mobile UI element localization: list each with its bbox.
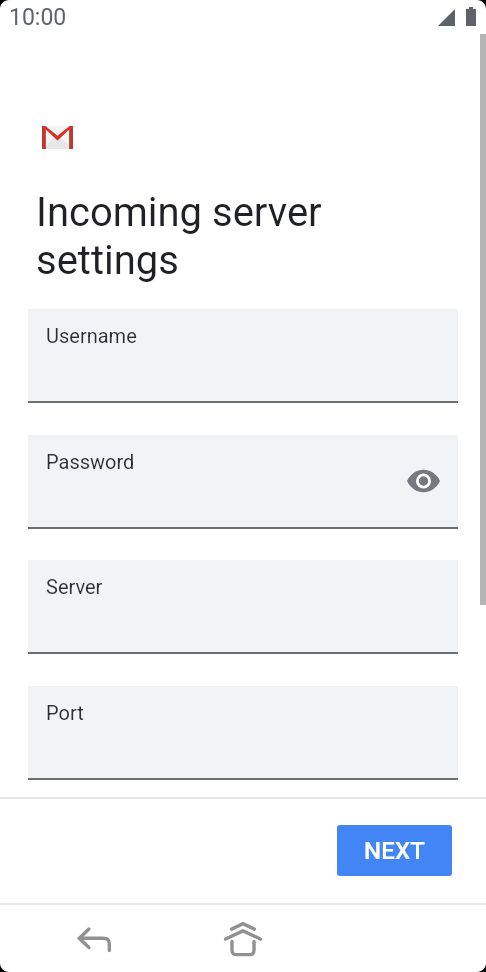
button[interactable]: Show password [401, 459, 445, 503]
button[interactable]: Username [28, 309, 458, 403]
staticText: NEXT [364, 837, 425, 865]
staticText: Username [46, 324, 137, 347]
button[interactable]: Back [54, 908, 134, 970]
button[interactable]: Password [28, 435, 458, 529]
staticText: 10:00 [9, 4, 67, 31]
staticText: Port [46, 701, 84, 724]
staticText: Server [46, 575, 103, 598]
staticText: Incoming server settings [36, 189, 322, 284]
staticText: Password [46, 450, 135, 473]
button[interactable]: NEXT [337, 825, 452, 876]
button[interactable]: Home [203, 908, 283, 970]
button[interactable]: Server [28, 560, 458, 654]
button[interactable]: Port [28, 686, 458, 780]
